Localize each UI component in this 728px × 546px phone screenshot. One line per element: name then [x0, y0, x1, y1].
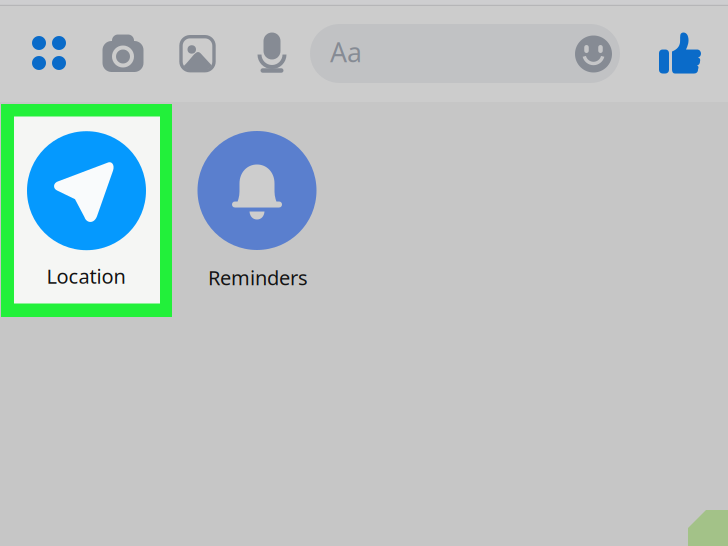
button[interactable]: Camera: [95, 23, 151, 83]
button[interactable]: Location: [14, 116, 160, 303]
button[interactable]: Aa message field: [310, 24, 620, 83]
button[interactable]: Photo library: [166, 20, 222, 80]
button[interactable]: More options: [21, 23, 77, 83]
button[interactable]: Voice message: [244, 23, 300, 83]
staticText: Location: [46, 263, 125, 289]
staticText: Reminders: [208, 264, 308, 291]
staticText: Aa: [330, 34, 362, 70]
button[interactable]: Reminders: [186, 118, 332, 305]
button[interactable]: Send a like: [652, 24, 708, 80]
